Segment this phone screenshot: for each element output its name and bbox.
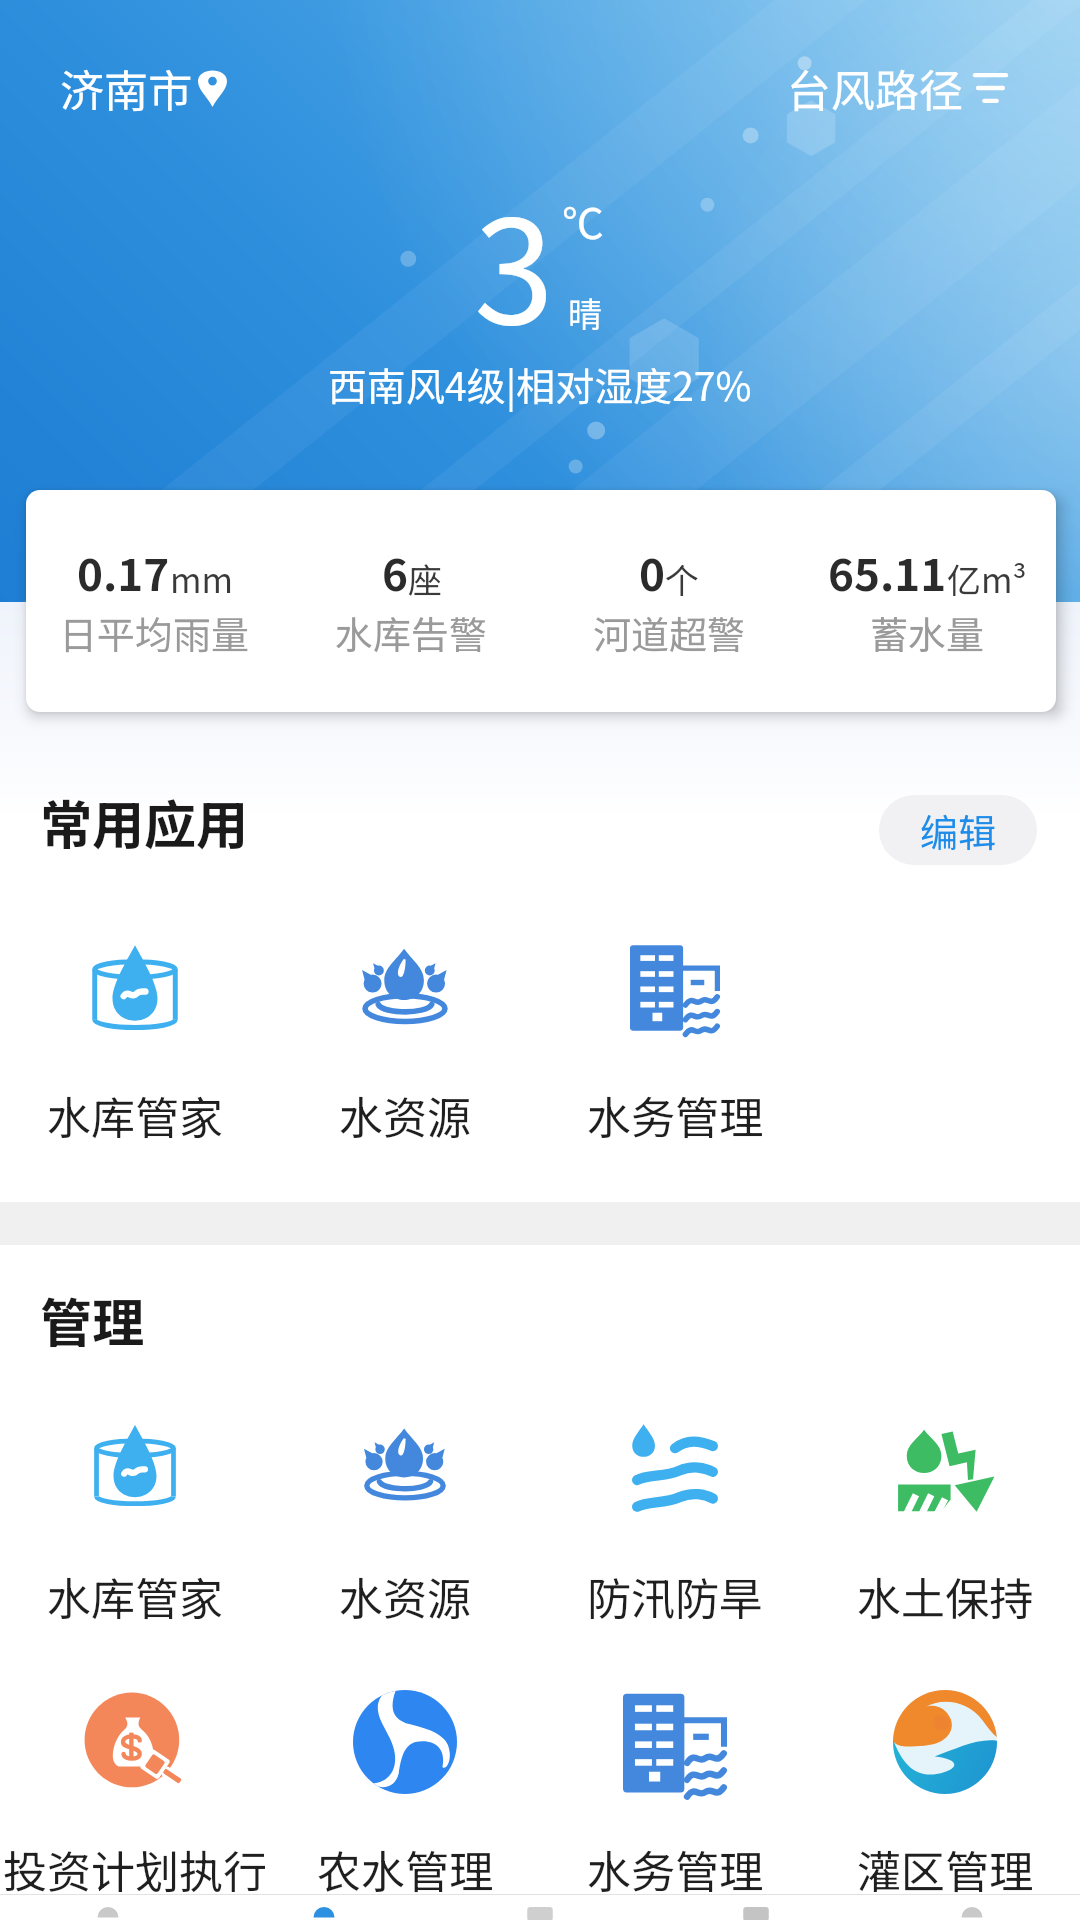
- staticText: 日平均雨量: [59, 605, 250, 660]
- staticText: 晴: [568, 288, 602, 337]
- staticText: 常用应用: [40, 784, 249, 859]
- staticText: 65.11: [828, 540, 947, 604]
- staticText: 水库管家: [47, 1564, 223, 1628]
- button[interactable]: 投资计划执行: [0, 0, 270, 1901]
- staticText: ℃: [562, 190, 605, 251]
- staticText: 座: [408, 554, 442, 603]
- button[interactable]: 农水管理: [270, 0, 540, 1901]
- button[interactable]: 6: [283, 540, 540, 660]
- staticText: 投资计划执行: [3, 1837, 267, 1901]
- button[interactable]: 0: [540, 540, 798, 660]
- button[interactable]: 济南市: [56, 44, 231, 132]
- staticText: 水资源: [339, 1083, 471, 1147]
- staticText: 防汛防旱: [587, 1564, 763, 1628]
- staticText: 6: [382, 540, 408, 604]
- button[interactable]: 我的: [864, 1895, 1080, 1920]
- staticText: 管理: [40, 1282, 145, 1357]
- staticText: 0: [639, 540, 665, 604]
- staticText: 水资源: [339, 1564, 471, 1628]
- button[interactable]: 水务管理: [540, 0, 810, 1901]
- staticText: 水库告警: [335, 605, 488, 660]
- button[interactable]: 防汛防旱: [540, 0, 810, 1628]
- button[interactable]: 水资源: [270, 0, 540, 1147]
- button[interactable]: 水库管家: [0, 0, 270, 1628]
- button[interactable]: 水库管家: [0, 0, 270, 1147]
- button[interactable]: 消息: [648, 1895, 864, 1920]
- button[interactable]: 灌区管理: [810, 0, 1080, 1901]
- button[interactable]: 65.11: [798, 540, 1056, 660]
- staticText: 河道超警: [593, 605, 746, 660]
- button[interactable]: 工作: [432, 1895, 648, 1920]
- staticText: 水库管家: [47, 1083, 223, 1147]
- button[interactable]: 编辑: [879, 795, 1037, 865]
- staticText: 灌区管理: [857, 1837, 1033, 1901]
- staticText: 0.17: [77, 540, 170, 604]
- staticText: mm: [170, 554, 233, 603]
- staticText: 编辑: [920, 803, 997, 858]
- staticText: 台风路径: [787, 56, 963, 120]
- staticText: 水务管理: [587, 1083, 763, 1147]
- staticText: 3: [474, 157, 554, 366]
- button[interactable]: 水资源: [270, 0, 540, 1628]
- button[interactable]: 应用: [216, 1895, 432, 1920]
- staticText: 蓄水量: [870, 605, 985, 660]
- staticText: 个: [665, 554, 699, 603]
- staticText: 亿m³: [947, 554, 1027, 603]
- staticText: 农水管理: [317, 1837, 493, 1901]
- staticText: 水务管理: [587, 1837, 763, 1901]
- button[interactable]: 0.17: [26, 540, 283, 660]
- button[interactable]: 首页: [0, 1895, 216, 1920]
- staticText: 西南风4级|相对湿度27%: [328, 356, 752, 412]
- staticText: 水土保持: [857, 1564, 1033, 1628]
- staticText: 济南市: [60, 56, 192, 120]
- button[interactable]: 水土保持: [810, 0, 1080, 1628]
- button[interactable]: 水务管理: [540, 0, 810, 1147]
- button[interactable]: 台风路径: [783, 44, 1010, 132]
